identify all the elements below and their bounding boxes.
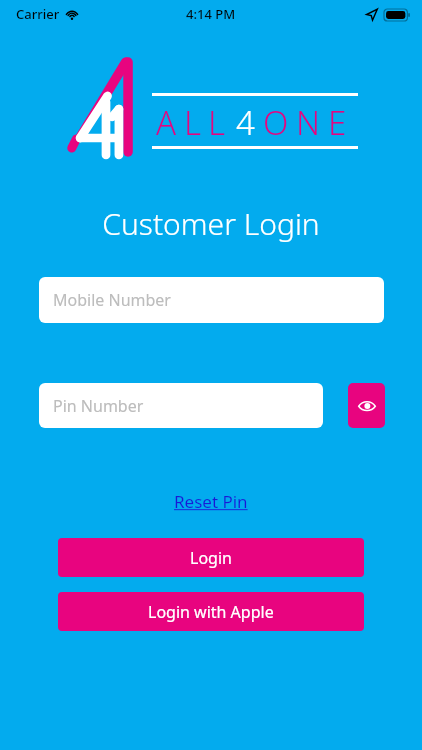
staticText: N xyxy=(296,100,321,144)
button[interactable]: Mobile Number xyxy=(39,277,384,323)
staticText: Reset Pin xyxy=(174,490,248,513)
staticText: L xyxy=(184,100,201,144)
staticText: Login with Apple xyxy=(148,601,274,623)
staticText: Carrier xyxy=(16,5,60,23)
staticText: 4 xyxy=(236,100,255,144)
staticText: Pin Number xyxy=(53,395,144,417)
button[interactable]: Reset Pin xyxy=(166,488,256,515)
staticText: O xyxy=(263,100,289,144)
staticText: Login xyxy=(190,547,232,569)
staticText: 4:14 PM xyxy=(186,5,236,23)
button[interactable]: Login xyxy=(58,538,364,577)
button[interactable]: Login with Apple xyxy=(58,592,364,631)
staticText: Customer Login xyxy=(0,203,422,244)
button[interactable]: Pin Number xyxy=(39,383,323,428)
button[interactable]: Show pin xyxy=(348,383,385,428)
staticText: Mobile Number xyxy=(53,289,171,311)
staticText: E xyxy=(328,100,347,144)
staticText: L xyxy=(208,100,225,144)
staticText: A xyxy=(156,100,177,144)
